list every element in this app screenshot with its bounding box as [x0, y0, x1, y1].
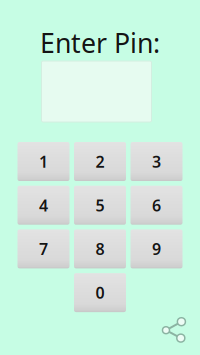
staticText: 6 [152, 195, 161, 216]
button[interactable]: 7 [17, 229, 69, 268]
button[interactable]: 9 [130, 229, 182, 268]
staticText: 4 [39, 195, 48, 216]
staticText: 7 [39, 238, 48, 259]
button[interactable]: 8 [74, 229, 126, 268]
staticText: 3 [152, 151, 161, 172]
staticText: 1 [39, 151, 48, 172]
button[interactable]: 1 [17, 142, 69, 181]
button[interactable]: Share [161, 316, 189, 346]
staticText: 8 [95, 238, 104, 259]
staticText: 0 [95, 282, 104, 303]
staticText: 5 [95, 195, 104, 216]
button[interactable]: 5 [74, 186, 126, 225]
staticText: 9 [152, 238, 161, 259]
button[interactable]: 3 [130, 142, 182, 181]
staticText: Enter Pin: [40, 25, 160, 60]
button[interactable]: 0 [74, 273, 126, 312]
button[interactable]: 2 [74, 142, 126, 181]
staticText: 2 [95, 151, 104, 172]
button[interactable]: 4 [17, 186, 69, 225]
button[interactable]: 6 [130, 186, 182, 225]
